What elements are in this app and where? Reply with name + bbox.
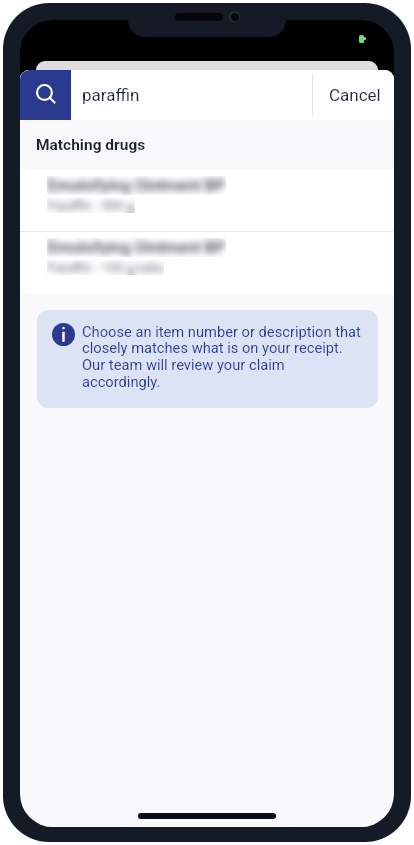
staticText: Emulsifying Ointment BP (47, 238, 226, 257)
button[interactable]: Emulsifying Ointment BP (20, 232, 394, 293)
button[interactable]: Emulsifying Ointment BP (20, 170, 394, 231)
button[interactable]: Search (20, 70, 71, 120)
staticText: Choose an item number or description tha… (82, 323, 363, 391)
button[interactable]: Choose an item number or description tha… (37, 310, 378, 408)
staticText: Paraffin - 500 g (47, 198, 135, 213)
staticText: paraffin (82, 85, 140, 105)
button[interactable]: Cancel (313, 70, 394, 120)
staticText: Paraffin - 100 g tube (47, 260, 164, 275)
staticText: Matching drugs (36, 136, 146, 154)
staticText: Emulsifying Ointment BP (47, 176, 226, 195)
staticText: Cancel (329, 85, 381, 105)
